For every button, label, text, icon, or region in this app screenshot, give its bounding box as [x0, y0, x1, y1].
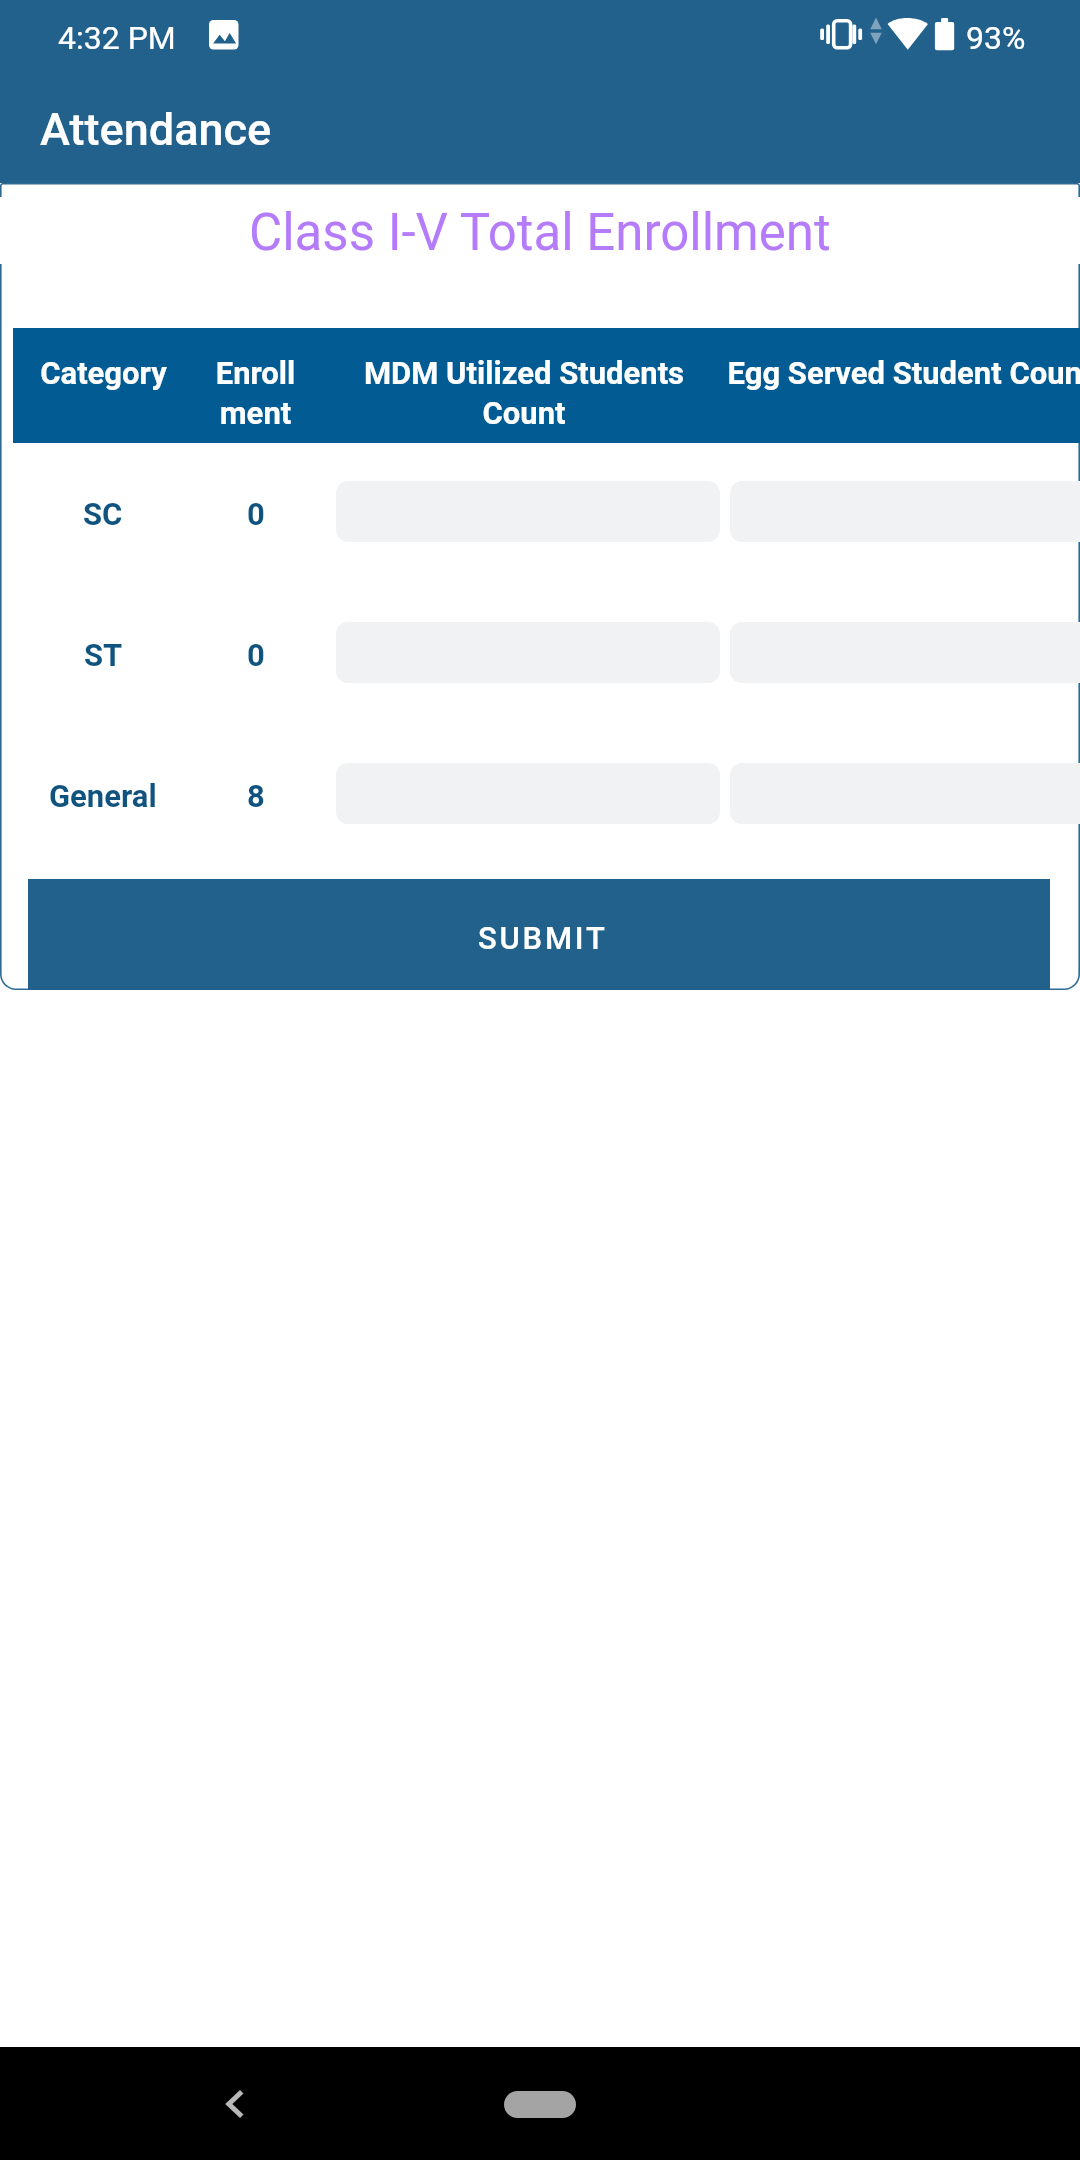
staticText: Category	[40, 355, 167, 391]
staticText: 93%	[966, 19, 1026, 57]
button[interactable]: Home	[504, 2091, 576, 2118]
staticText: MDM Utilized Students Count	[330, 355, 718, 432]
staticText: 0	[247, 496, 265, 532]
staticText: Class I-V Total Enrollment	[249, 203, 831, 263]
staticText: Enrollment	[205, 355, 306, 432]
staticText: 8	[247, 778, 265, 814]
button[interactable]: SUBMIT	[28, 879, 1050, 990]
staticText: ST	[84, 637, 123, 673]
button[interactable]: Back	[196, 2064, 276, 2144]
staticText: 0	[247, 637, 265, 673]
staticText: 4:32 PM	[58, 19, 176, 57]
staticText: Attendance	[40, 103, 272, 156]
staticText: SC	[83, 496, 123, 532]
staticText: General	[49, 778, 157, 814]
staticText: SUBMIT	[478, 920, 608, 956]
staticText: Egg Served Student Count	[610, 355, 1080, 391]
